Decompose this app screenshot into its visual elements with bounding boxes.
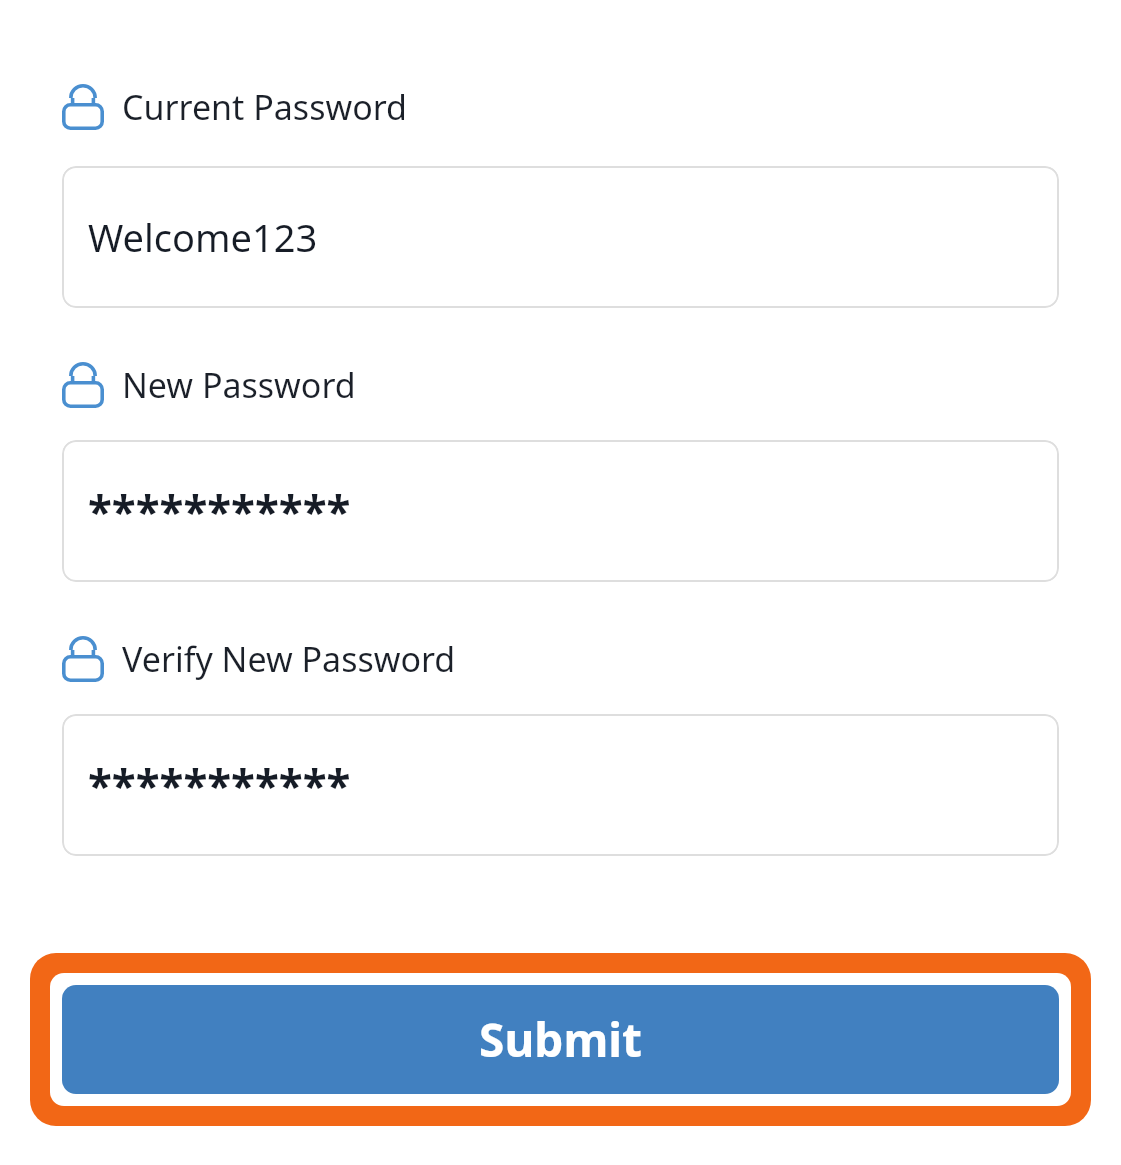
staticText: Current Password	[122, 84, 407, 130]
staticText: ***********	[88, 755, 351, 815]
button[interactable]: New Password	[62, 440, 1059, 582]
button[interactable]: Verify New Password	[62, 714, 1059, 856]
button[interactable]: Current Password	[62, 166, 1059, 308]
staticText: Submit	[479, 1008, 642, 1071]
staticText: ***********	[88, 481, 351, 541]
staticText: Welcome123	[88, 211, 318, 263]
button[interactable]: Submit	[62, 985, 1059, 1094]
staticText: New Password	[122, 362, 356, 408]
staticText: Verify New Password	[122, 636, 456, 682]
